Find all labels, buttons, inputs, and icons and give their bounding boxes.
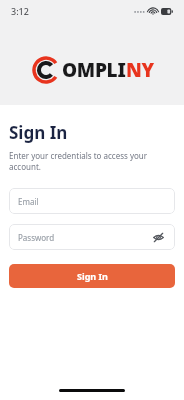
staticText: NY — [126, 57, 154, 83]
staticText: OMPLI — [62, 57, 126, 83]
staticText: Email — [18, 196, 39, 207]
button[interactable]: Sign In — [9, 264, 175, 288]
staticText: Sign In — [9, 121, 68, 144]
staticText: 3:12 — [11, 5, 29, 17]
button[interactable]: Email input — [9, 188, 175, 214]
staticText: Enter your credentials to access your ac… — [9, 150, 175, 172]
button[interactable]: Show password — [150, 229, 166, 245]
staticText: Sign In — [77, 270, 108, 282]
button[interactable]: Password input — [9, 224, 175, 250]
staticText: Password — [18, 232, 55, 243]
